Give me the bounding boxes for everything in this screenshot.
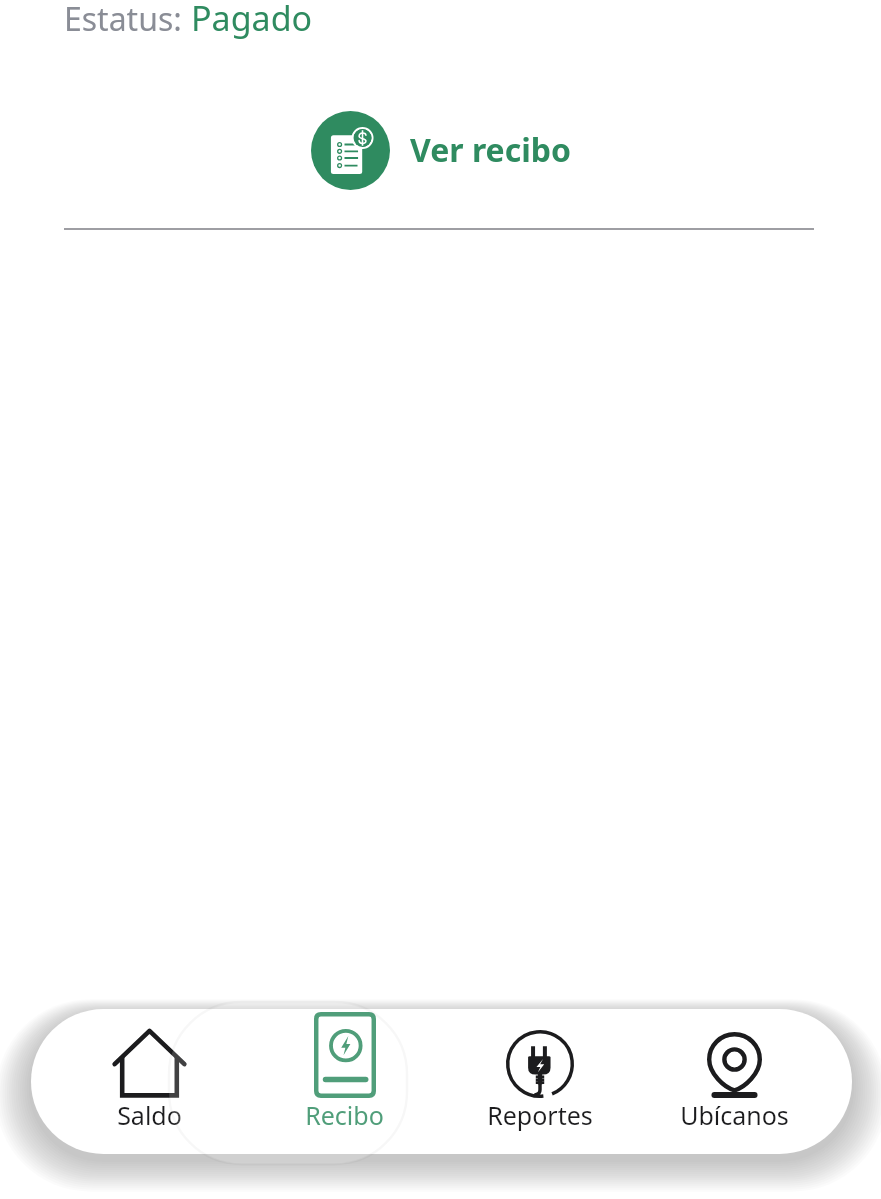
button[interactable]: Ver recibo xyxy=(0,105,881,195)
button[interactable]: Reportes xyxy=(442,1009,637,1154)
staticText: Estatus: xyxy=(64,0,191,41)
button[interactable]: Saldo xyxy=(51,1009,247,1154)
button[interactable]: Ubícanos xyxy=(637,1009,832,1154)
staticText: Ubícanos xyxy=(680,1098,789,1132)
staticText: Pagado xyxy=(191,0,313,41)
staticText: Reportes xyxy=(487,1098,593,1132)
button[interactable]: Recibo xyxy=(247,1009,442,1154)
staticText: Ver recibo xyxy=(410,128,571,172)
staticText: Saldo xyxy=(117,1098,182,1132)
staticText: Recibo xyxy=(305,1098,384,1132)
